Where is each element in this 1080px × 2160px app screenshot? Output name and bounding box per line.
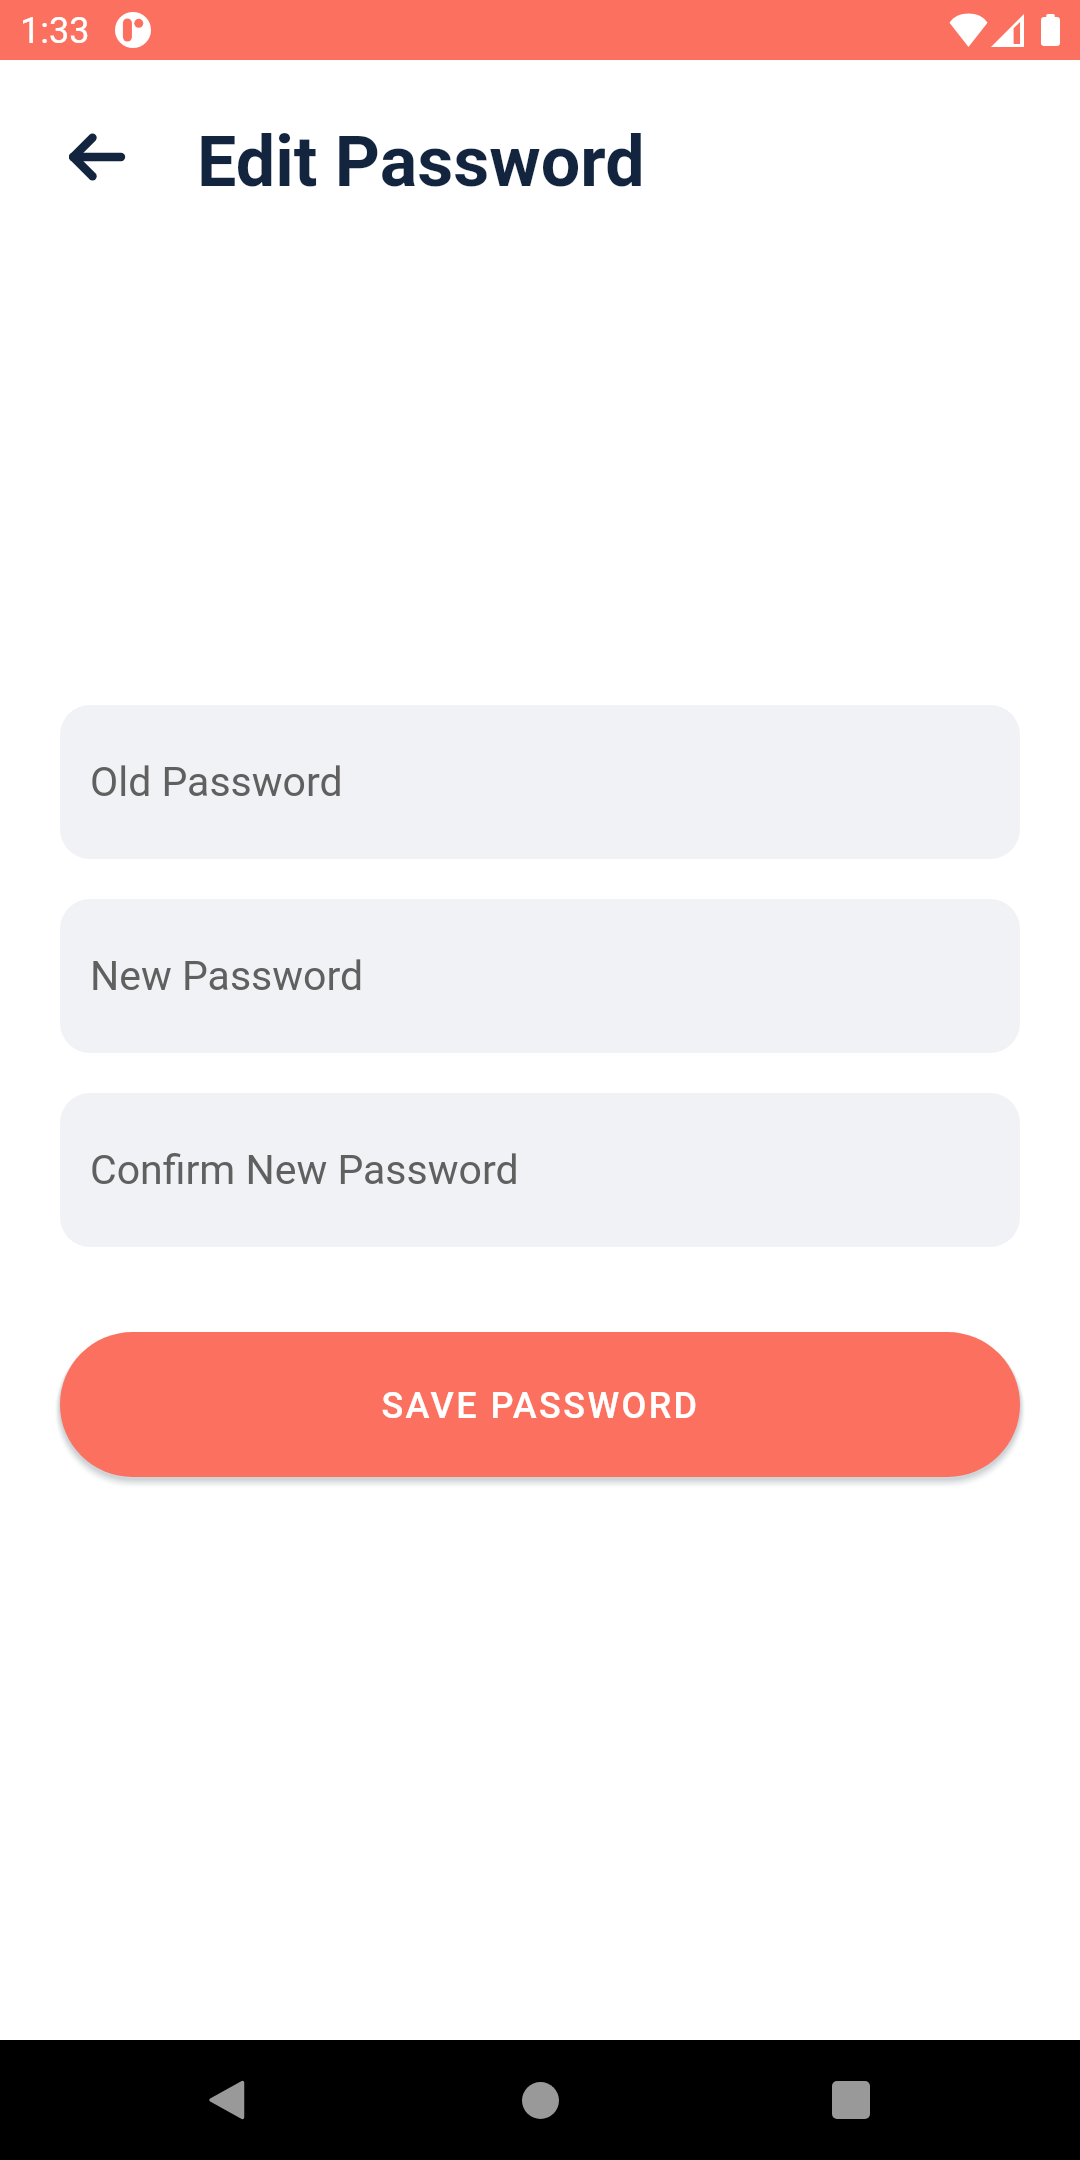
button[interactable]: Old Password xyxy=(60,705,1020,859)
staticText: 1:33 xyxy=(20,10,90,52)
button[interactable]: Recents xyxy=(811,2060,891,2140)
button[interactable]: Back xyxy=(186,2060,266,2140)
button[interactable]: Back xyxy=(47,107,147,207)
staticText: Confirm New Password xyxy=(90,1146,519,1194)
button[interactable]: SAVE PASSWORD xyxy=(60,1332,1020,1477)
button[interactable]: New Password xyxy=(60,899,1020,1053)
staticText: SAVE PASSWORD xyxy=(381,1385,700,1427)
staticText: Old Password xyxy=(90,758,343,806)
staticText: Edit Password xyxy=(197,121,645,203)
button[interactable]: Home xyxy=(500,2060,580,2140)
staticText: New Password xyxy=(90,952,364,1000)
button[interactable]: Confirm New Password xyxy=(60,1093,1020,1247)
